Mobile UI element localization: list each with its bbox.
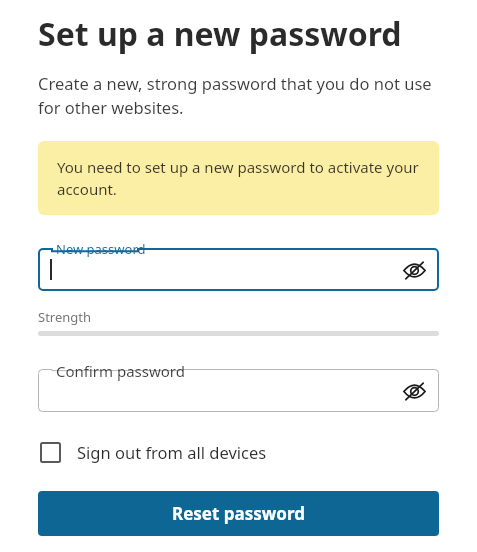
- button[interactable]: Sign out from all devices: [38, 437, 269, 467]
- staticText: Create a new, strong password that you d…: [38, 72, 439, 119]
- button[interactable]: Confirm password: [38, 369, 439, 412]
- button[interactable]: New password: [38, 248, 439, 291]
- staticText: New password: [56, 240, 146, 258]
- button[interactable]: Show password: [397, 253, 431, 287]
- staticText: Confirm password: [56, 361, 185, 381]
- staticText: You need to set up a new password to act…: [57, 157, 420, 200]
- button[interactable]: Reset password: [38, 491, 439, 536]
- staticText: Set up a new password: [38, 12, 402, 56]
- staticText: Sign out from all devices: [77, 441, 267, 463]
- staticText: Strength: [38, 308, 92, 326]
- staticText: Reset password: [172, 502, 305, 525]
- button[interactable]: Show password: [397, 374, 431, 408]
